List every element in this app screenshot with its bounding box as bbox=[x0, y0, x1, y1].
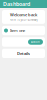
staticText: Here is your summary bbox=[9, 18, 37, 22]
staticText: Item one bbox=[10, 28, 25, 33]
staticText: Details bbox=[17, 51, 30, 56]
staticText: Action bbox=[31, 40, 40, 44]
staticText: Welcome back bbox=[10, 12, 37, 17]
staticText: Dashboard bbox=[3, 0, 30, 8]
